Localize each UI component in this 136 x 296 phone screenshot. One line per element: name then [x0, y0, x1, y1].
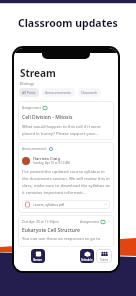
staticText: I've posted the updated course syllabus …	[22, 169, 110, 195]
staticText: Teams	[100, 258, 109, 262]
button[interactable]: Announcement	[18, 142, 114, 213]
staticText: Eukaryote Cell Structure	[22, 227, 80, 234]
button[interactable]: All Posts	[19, 88, 39, 97]
button[interactable]: Schedule	[80, 249, 94, 263]
staticText: Stream	[20, 66, 56, 80]
button[interactable]: Stream	[31, 249, 45, 263]
staticText: Due Apr 20 at 11:59pm	[22, 219, 59, 224]
staticText: Assignment	[80, 219, 99, 224]
staticText: Announcement	[22, 146, 47, 151]
staticText: You can use these as responses to go to …	[22, 236, 110, 243]
button[interactable]: Due Apr 20 at 11:59pm	[18, 215, 114, 247]
staticText: Cell Division - Mitosis	[22, 114, 73, 121]
staticText: Classroom updates	[18, 16, 118, 30]
staticText: Schedule	[81, 258, 93, 262]
button[interactable]: Announcements	[42, 88, 75, 97]
staticText: ···	[104, 202, 107, 207]
staticText: Sunday, Apr 16 at 9:12 AM	[33, 161, 70, 165]
staticText: Biology	[20, 81, 35, 86]
staticText: course_syllabus.pdf	[33, 202, 65, 207]
staticText: Assignment	[22, 105, 41, 110]
staticText: Harrieta Craig	[33, 156, 60, 161]
staticText: Classwork	[81, 90, 98, 95]
staticText: What would happen to this cell if it wer…	[22, 124, 110, 136]
button[interactable]: Teams	[96, 249, 112, 263]
staticText: Announcements	[45, 90, 72, 95]
button[interactable]: Classwork	[78, 88, 101, 97]
staticText: All Posts	[22, 90, 36, 95]
button[interactable]: Assignment	[18, 101, 114, 140]
button[interactable]: course_syllabus.pdf	[22, 200, 110, 209]
staticText: Stream	[33, 258, 43, 262]
staticText: ···	[107, 219, 110, 224]
